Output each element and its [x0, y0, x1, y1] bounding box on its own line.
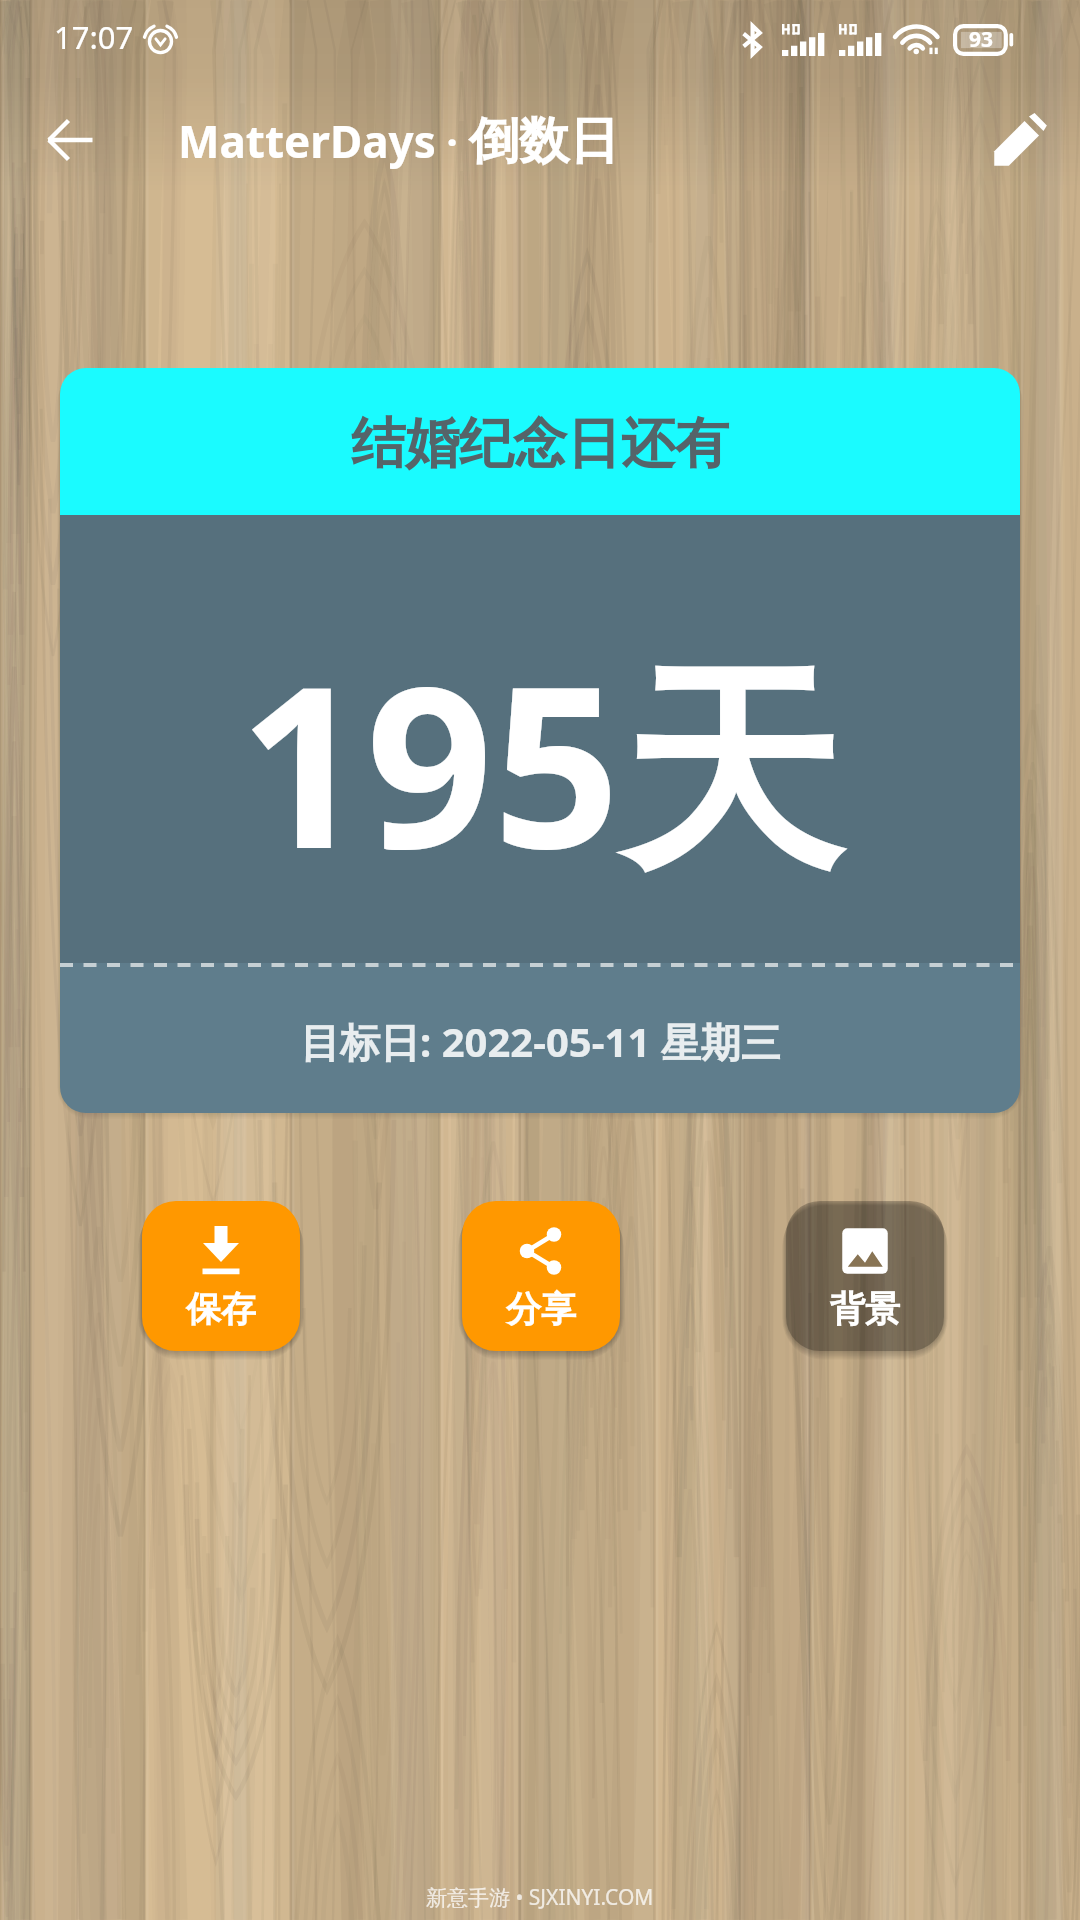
button[interactable]: 分享: [462, 1201, 620, 1351]
button[interactable]: Back: [32, 102, 108, 178]
staticText: MatterDays: [178, 111, 436, 171]
staticText: 保存: [186, 1287, 256, 1331]
staticText: 结婚纪念日还有: [351, 410, 729, 478]
staticText: 分享: [506, 1287, 576, 1331]
staticText: ·: [436, 114, 469, 168]
button[interactable]: Edit: [982, 102, 1058, 178]
button[interactable]: 保存: [142, 1201, 300, 1351]
button[interactable]: 背景: [786, 1201, 944, 1351]
staticText: 93: [969, 25, 994, 54]
staticText: 目标日: 2022-05-11 星期三: [300, 1014, 781, 1069]
staticText: 新意手游 • SJXINYI.COM: [426, 1883, 654, 1912]
staticText: 17:07: [54, 16, 134, 58]
staticText: 195天: [239, 611, 842, 914]
staticText: 背景: [830, 1287, 900, 1331]
staticText: 倒数日: [469, 110, 619, 173]
button[interactable]: 结婚纪念日还有: [60, 368, 1020, 1113]
